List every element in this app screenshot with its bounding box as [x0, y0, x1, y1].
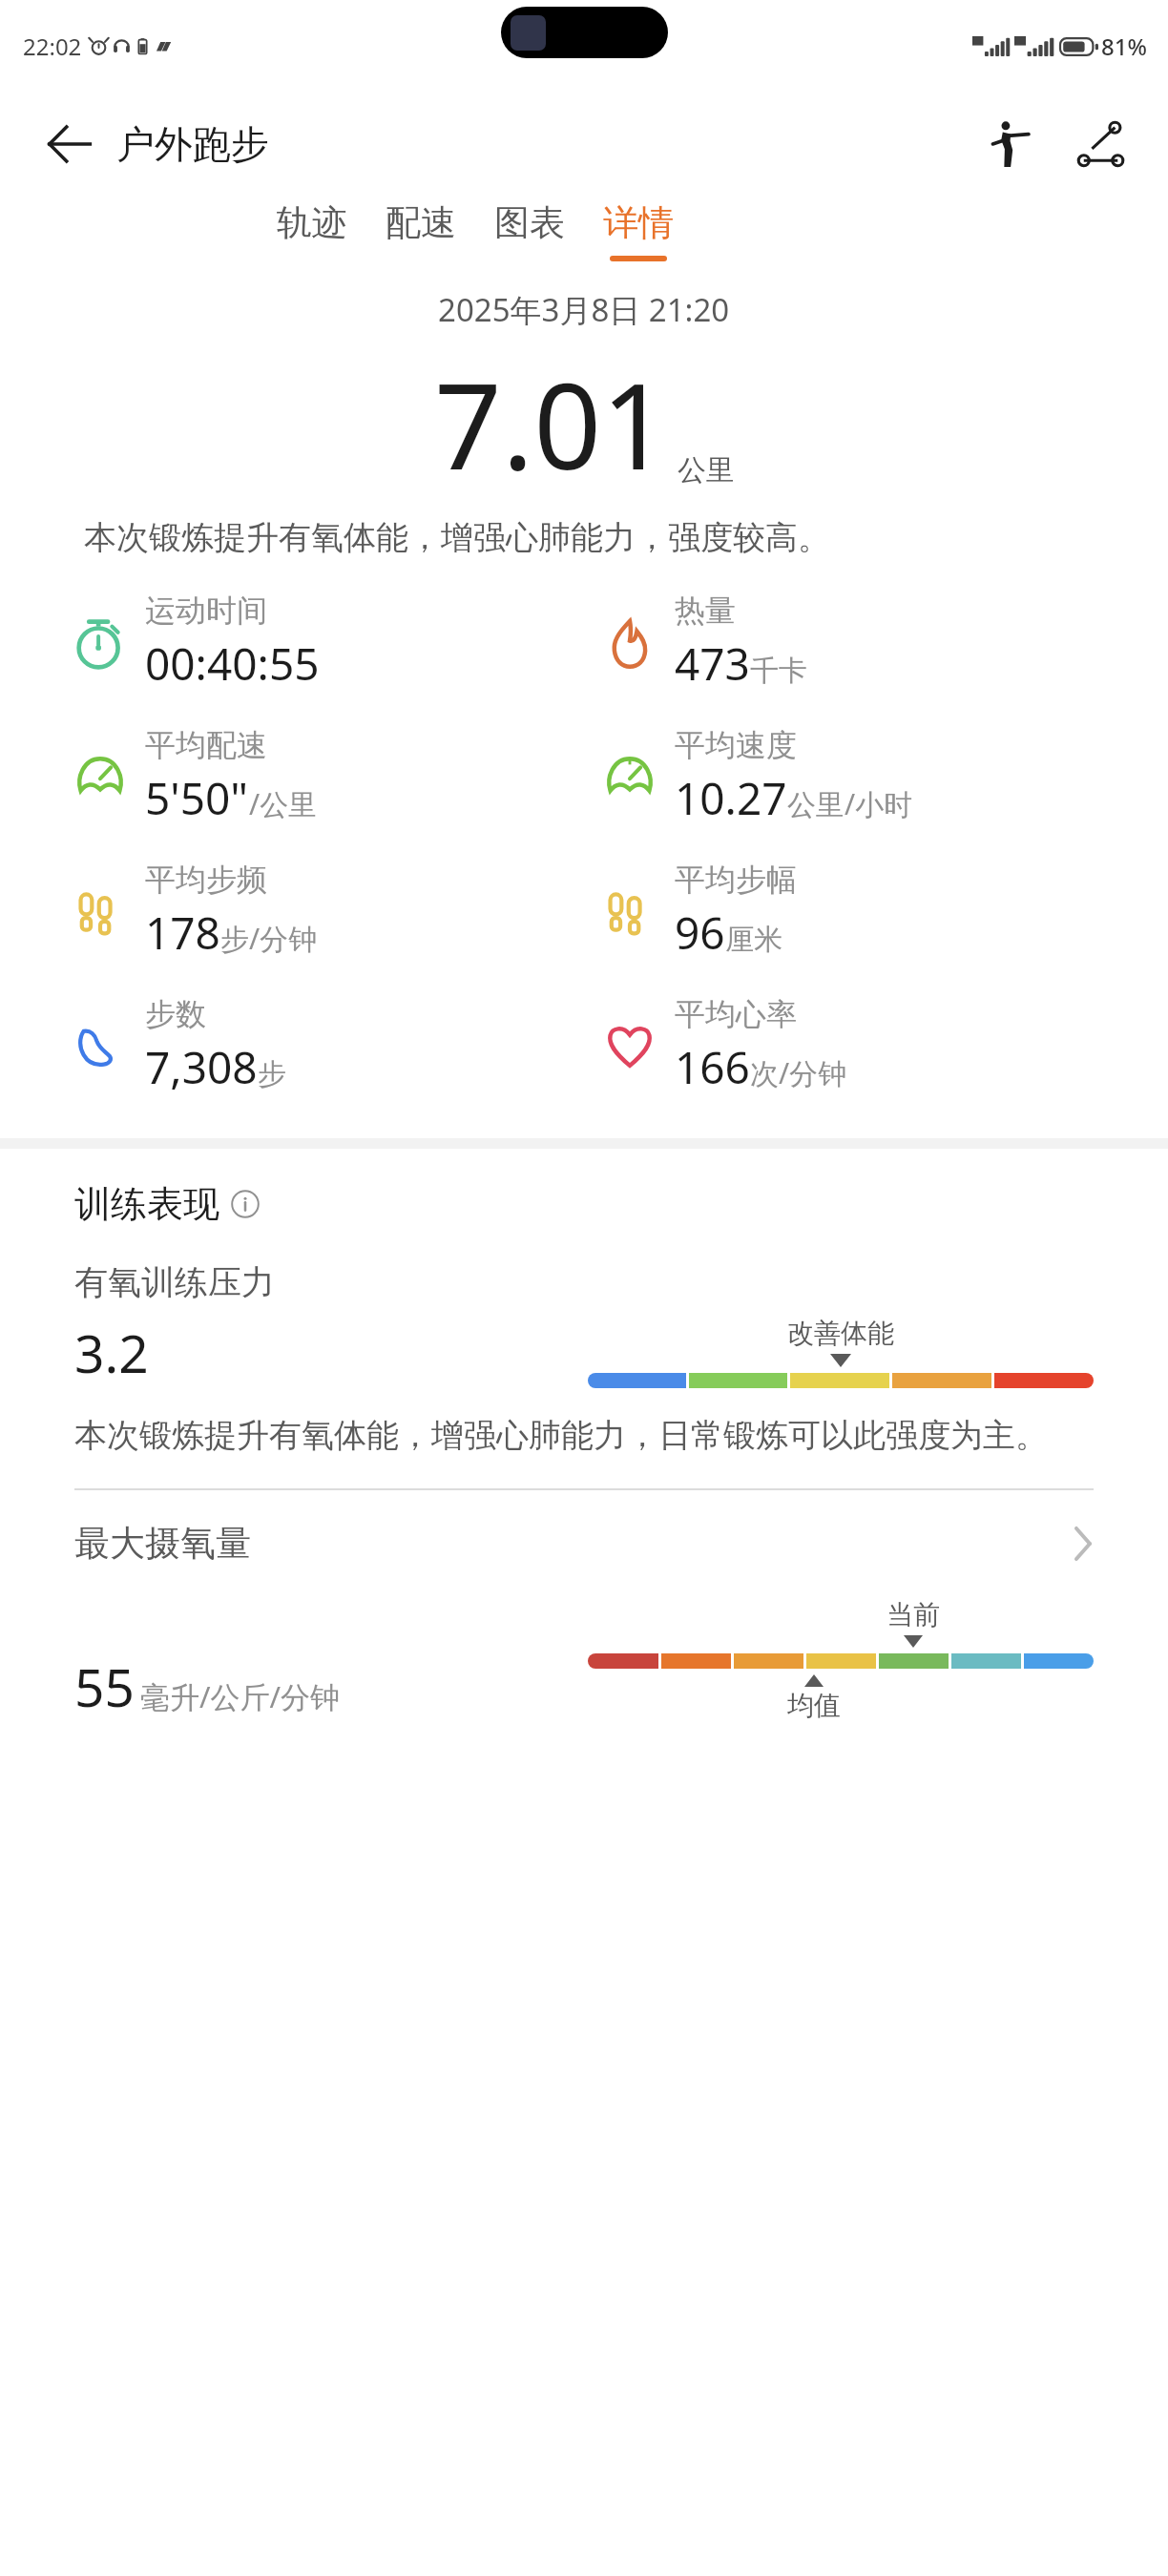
- button[interactable]: 平均心率: [600, 995, 1130, 1097]
- staticText: 热量: [675, 592, 736, 630]
- staticText: 有氧训练压力: [74, 1261, 275, 1303]
- staticText: 最大摄氧量: [74, 1521, 251, 1566]
- staticText: 步: [258, 1056, 286, 1092]
- staticText: 厘米: [725, 922, 782, 958]
- staticText: 次/分钟: [750, 1053, 847, 1092]
- staticText: 公里: [678, 452, 735, 488]
- button[interactable]: 详情: [603, 197, 674, 265]
- button[interactable]: 平均步幅: [600, 861, 1130, 963]
- button[interactable]: 轨迹: [277, 197, 347, 265]
- button[interactable]: Runner: [977, 114, 1038, 175]
- staticText: 千卡: [750, 653, 807, 689]
- staticText: 00:40:55: [145, 634, 320, 694]
- staticText: 473: [675, 634, 750, 694]
- button[interactable]: 最大摄氧量: [74, 1521, 1094, 1566]
- staticText: 轨迹: [277, 200, 347, 245]
- staticText: 步/分钟: [220, 919, 318, 958]
- button[interactable]: 配速: [386, 197, 456, 265]
- button[interactable]: 热量: [600, 592, 1130, 694]
- staticText: 55: [74, 1651, 135, 1722]
- button[interactable]: 平均步频: [71, 861, 600, 963]
- staticText: 平均步频: [145, 861, 267, 899]
- staticText: /公里: [249, 784, 318, 823]
- staticText: 详情: [603, 200, 674, 245]
- button[interactable]: 图表: [494, 197, 565, 265]
- staticText: 本次锻炼提升有氧体能，增强心肺能力，强度较高。: [84, 517, 1084, 558]
- staticText: 平均心率: [675, 995, 797, 1033]
- staticText: 10.27: [675, 768, 787, 828]
- other: More: [1073, 1525, 1094, 1563]
- button[interactable]: Back: [42, 117, 95, 171]
- staticText: 3.2: [74, 1317, 149, 1388]
- staticText: 本次锻炼提升有氧体能，增强心肺能力，日常锻炼可以此强度为主。: [74, 1415, 1048, 1456]
- button[interactable]: 平均配速: [71, 726, 600, 828]
- staticText: 平均速度: [675, 726, 797, 764]
- staticText: 166: [675, 1037, 750, 1097]
- staticText: 图表: [494, 200, 565, 245]
- staticText: 96: [675, 903, 725, 963]
- staticText: 公里/小时: [787, 784, 913, 823]
- staticText: 配速: [386, 200, 456, 245]
- staticText: 平均步幅: [675, 861, 797, 899]
- staticText: 平均配速: [145, 726, 267, 764]
- staticText: 22:02: [23, 31, 82, 62]
- staticText: 5'50": [145, 768, 249, 828]
- staticText: 户外跑步: [116, 120, 269, 168]
- button[interactable]: Share: [1071, 114, 1132, 175]
- staticText: 当前: [886, 1598, 940, 1631]
- staticText: 178: [145, 903, 220, 963]
- staticText: 81%: [1101, 31, 1147, 62]
- button[interactable]: 运动时间: [71, 592, 600, 694]
- staticText: 训练表现: [74, 1181, 219, 1227]
- button[interactable]: 训练表现: [74, 1181, 260, 1227]
- staticText: 均值: [787, 1689, 841, 1722]
- staticText: 7.01: [434, 343, 670, 504]
- staticText: 毫升/公斤/分钟: [140, 1676, 341, 1716]
- staticText: 2025年3月8日 21:20: [438, 288, 730, 331]
- staticText: 运动时间: [145, 592, 267, 630]
- button[interactable]: 平均速度: [600, 726, 1130, 828]
- staticText: 改善体能: [787, 1317, 894, 1350]
- button[interactable]: 步数: [71, 995, 600, 1097]
- staticText: 步数: [145, 995, 206, 1033]
- staticText: 7,308: [145, 1037, 258, 1097]
